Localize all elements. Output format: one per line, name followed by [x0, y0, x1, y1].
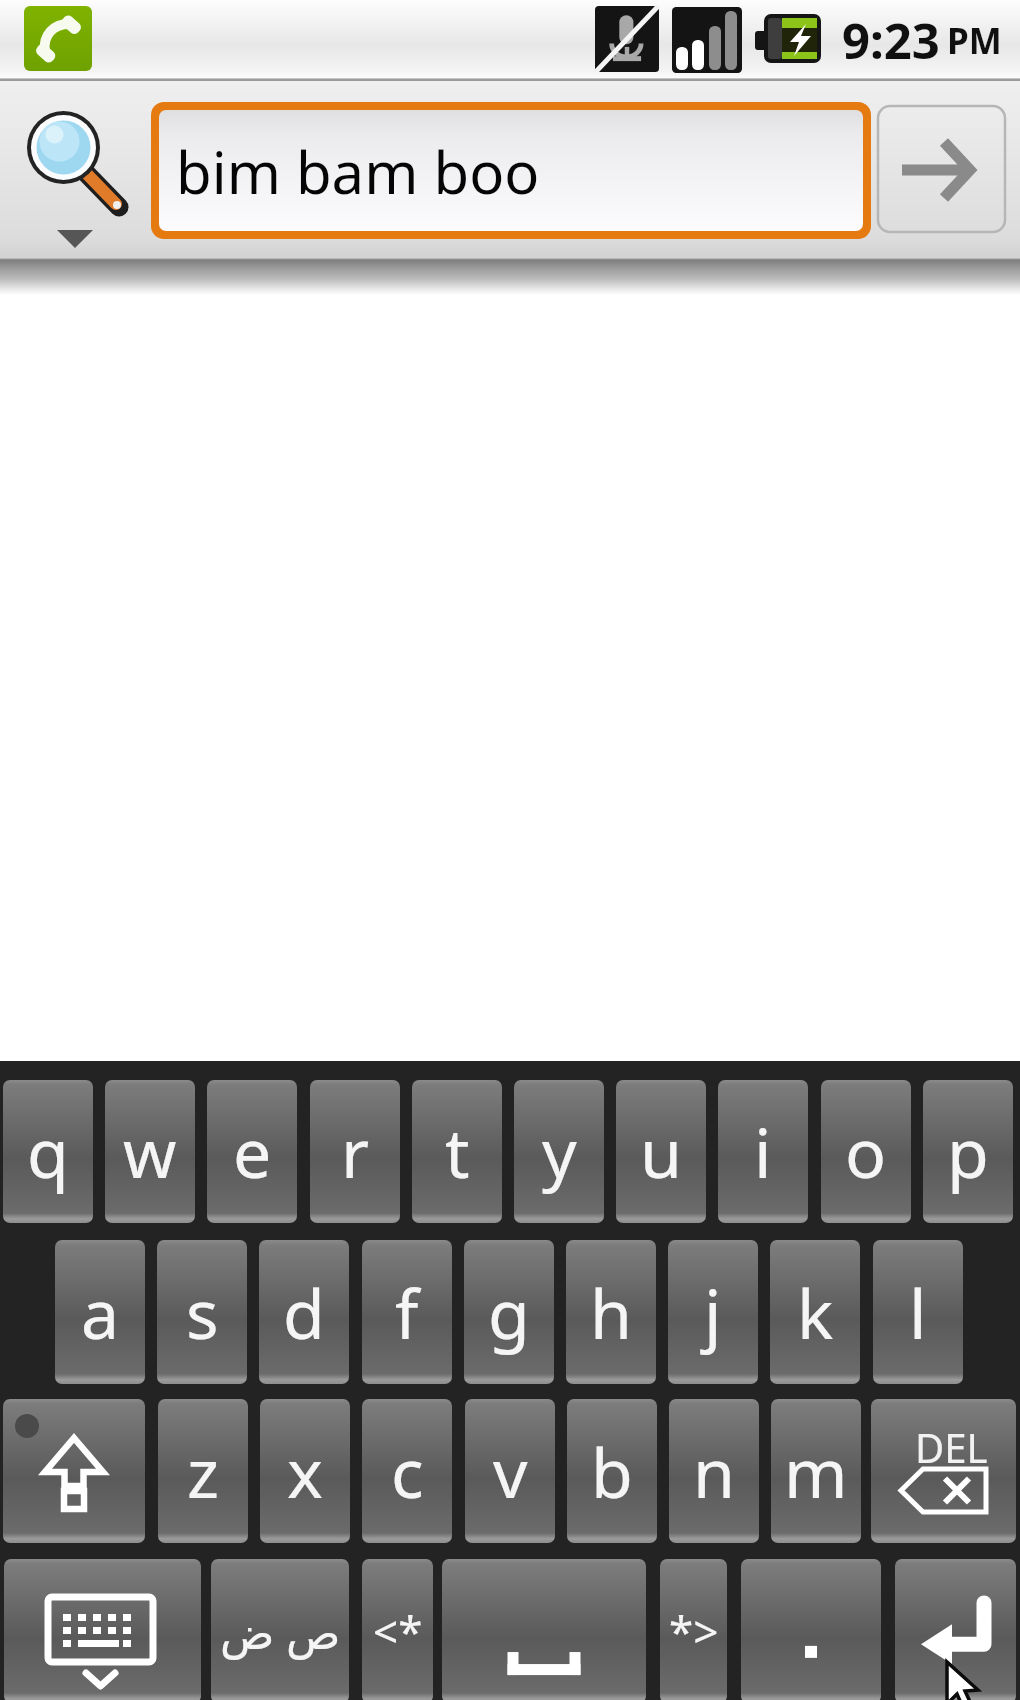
- staticText: r: [341, 1105, 370, 1198]
- button[interactable]: y: [514, 1080, 604, 1223]
- button[interactable]: e: [207, 1080, 297, 1223]
- button[interactable]: bim bam boo: [159, 110, 863, 231]
- staticText: *>: [669, 1601, 719, 1661]
- button[interactable]: ص ض: [211, 1559, 349, 1700]
- button[interactable]: q: [3, 1080, 93, 1223]
- staticText: bim bam boo: [176, 132, 540, 211]
- staticText: x: [287, 1425, 323, 1518]
- staticText: DEL: [915, 1420, 988, 1474]
- staticText: i: [754, 1105, 772, 1198]
- button[interactable]: [895, 1559, 1016, 1700]
- button[interactable]: [4, 1559, 201, 1700]
- button[interactable]: [442, 1559, 646, 1700]
- staticText: q: [27, 1105, 69, 1198]
- staticText: d: [283, 1266, 325, 1359]
- button[interactable]: s: [157, 1240, 247, 1384]
- staticText: ص ض: [220, 1601, 341, 1662]
- button[interactable]: k: [770, 1240, 860, 1384]
- button[interactable]: z: [158, 1399, 248, 1543]
- staticText: z: [187, 1425, 219, 1518]
- button[interactable]: m: [771, 1399, 861, 1543]
- staticText: PM: [947, 17, 1002, 65]
- staticText: 9:23: [842, 7, 940, 74]
- staticText: w: [123, 1105, 177, 1198]
- staticText: <*: [373, 1601, 423, 1661]
- button[interactable]: h: [566, 1240, 656, 1384]
- staticText: s: [186, 1266, 219, 1359]
- button[interactable]: DEL: [871, 1399, 1016, 1543]
- button[interactable]: *>: [660, 1559, 727, 1700]
- staticText: h: [590, 1266, 633, 1359]
- button[interactable]: t: [412, 1080, 502, 1223]
- staticText: t: [445, 1105, 470, 1198]
- staticText: a: [81, 1266, 120, 1359]
- button[interactable]: w: [105, 1080, 195, 1223]
- staticText: o: [845, 1105, 887, 1198]
- button[interactable]: c: [362, 1399, 452, 1543]
- staticText: m: [784, 1425, 848, 1518]
- staticText: f: [395, 1266, 419, 1359]
- button[interactable]: <*: [362, 1559, 433, 1700]
- staticText: v: [493, 1425, 528, 1518]
- button[interactable]: u: [616, 1080, 706, 1223]
- button[interactable]: [3, 1399, 145, 1543]
- button[interactable]: v: [465, 1399, 555, 1543]
- button[interactable]: Search source: [18, 85, 150, 253]
- staticText: y: [542, 1105, 577, 1198]
- button[interactable]: Search: [876, 104, 1020, 234]
- button[interactable]: d: [259, 1240, 349, 1384]
- button[interactable]: l: [873, 1240, 963, 1384]
- button[interactable]: n: [669, 1399, 759, 1543]
- button[interactable]: p: [923, 1080, 1013, 1223]
- button[interactable]: g: [464, 1240, 554, 1384]
- button[interactable]: x: [260, 1399, 350, 1543]
- button[interactable]: o: [821, 1080, 911, 1223]
- button[interactable]: a: [55, 1240, 145, 1384]
- button[interactable]: j: [668, 1240, 758, 1384]
- staticText: k: [797, 1266, 834, 1359]
- button[interactable]: b: [567, 1399, 657, 1543]
- staticText: l: [909, 1266, 927, 1359]
- staticText: b: [591, 1425, 633, 1518]
- button[interactable]: f: [362, 1240, 452, 1384]
- button[interactable]: r: [310, 1080, 400, 1223]
- staticText: n: [693, 1425, 736, 1518]
- staticText: j: [704, 1266, 722, 1359]
- button[interactable]: [741, 1559, 881, 1700]
- staticText: e: [233, 1105, 272, 1198]
- staticText: u: [640, 1105, 683, 1198]
- staticText: g: [488, 1266, 530, 1359]
- button[interactable]: Call in progress: [24, 6, 92, 71]
- staticText: p: [947, 1105, 989, 1198]
- button[interactable]: i: [718, 1080, 808, 1223]
- staticText: c: [391, 1425, 424, 1518]
